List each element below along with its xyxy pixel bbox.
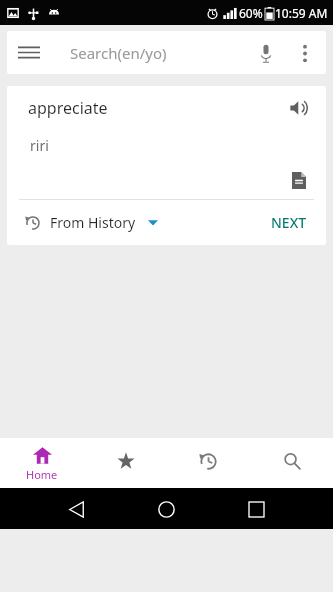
staticText: Search(en/yo) (70, 43, 167, 63)
button[interactable]: Search (250, 438, 333, 488)
staticText: appreciate (28, 97, 108, 119)
staticText: 60% (239, 5, 263, 21)
button[interactable]: Show details (282, 163, 316, 197)
button[interactable]: Home (148, 491, 184, 527)
button[interactable]: Search(en/yo) (70, 43, 246, 63)
button[interactable]: From History (25, 213, 158, 232)
staticText: From History (50, 213, 136, 232)
button[interactable]: Back (58, 491, 94, 527)
staticText: NEXT (271, 213, 307, 232)
button[interactable]: Open navigation menu (7, 31, 51, 74)
button[interactable]: Recent apps (238, 491, 274, 527)
staticText: riri (30, 136, 49, 155)
button[interactable]: appreciate (7, 86, 326, 130)
staticText: 10:59 AM (275, 5, 328, 21)
button[interactable]: Pronounce word (280, 89, 318, 127)
button[interactable]: NEXT (257, 205, 321, 240)
button[interactable]: History (167, 438, 250, 488)
button[interactable]: Favorites (84, 438, 167, 488)
button[interactable]: Voice search (246, 33, 286, 73)
staticText: Home (26, 467, 58, 482)
button[interactable]: More options (286, 34, 324, 72)
button[interactable]: Home (0, 438, 84, 488)
